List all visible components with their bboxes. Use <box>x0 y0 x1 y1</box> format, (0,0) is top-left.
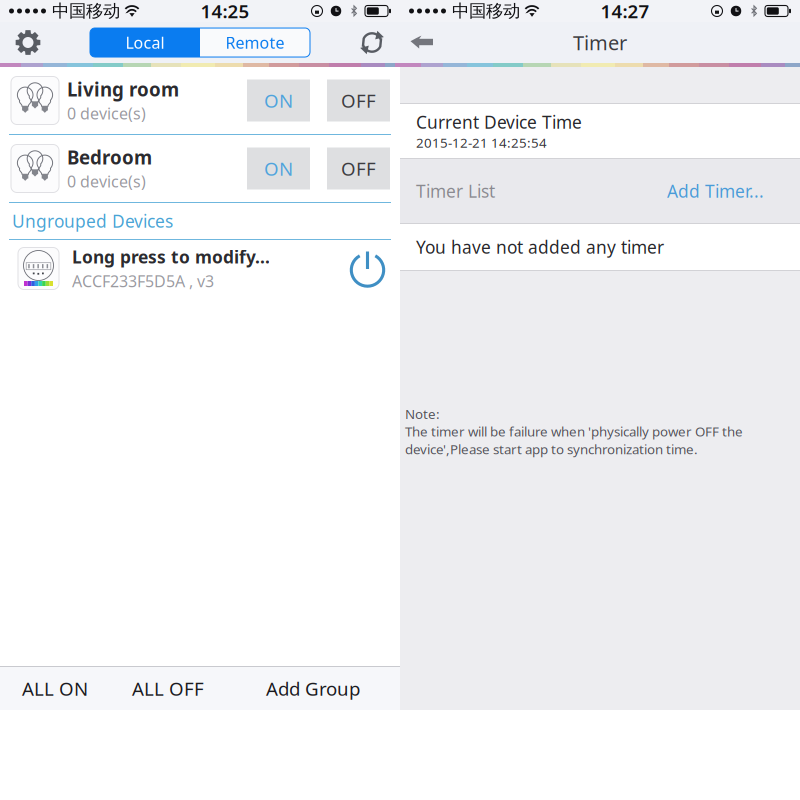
staticText: Living room <box>67 77 179 102</box>
button[interactable]: ALL ON <box>0 667 110 710</box>
staticText: ALL ON <box>22 676 88 701</box>
button[interactable]: ON <box>247 79 310 121</box>
staticText: ON <box>264 156 293 181</box>
staticText: Note: <box>405 405 440 423</box>
staticText: The timer will be failure when 'physical… <box>405 423 743 440</box>
staticText: Local <box>125 32 164 53</box>
staticText: Current Device Time <box>416 111 582 134</box>
staticText: Timer <box>573 29 627 56</box>
staticText: 0 device(s) <box>67 171 146 192</box>
staticText: 2015-12-21 14:25:54 <box>416 134 547 151</box>
button[interactable]: ALL OFF <box>110 667 226 710</box>
button[interactable]: Refresh <box>350 23 394 61</box>
staticText: device',Please start app to synchronizat… <box>405 440 698 458</box>
staticText: Add Group <box>266 676 360 701</box>
staticText: Long press to modify... <box>72 245 270 268</box>
button[interactable]: ON <box>247 147 310 189</box>
button[interactable]: Add Timer... <box>667 179 764 202</box>
staticText: 中国移动 <box>452 0 520 22</box>
staticText: Timer List <box>416 179 495 202</box>
button[interactable]: Settings <box>6 23 50 61</box>
button[interactable]: Local <box>90 28 200 57</box>
staticText: 14:27 <box>600 0 649 23</box>
staticText: ALL OFF <box>132 676 204 701</box>
staticText: 0 device(s) <box>67 103 146 124</box>
staticText: 中国移动 <box>52 0 120 22</box>
staticText: OFF <box>341 156 376 181</box>
staticText: Remote <box>225 32 284 53</box>
staticText: Bedroom <box>67 145 152 170</box>
staticText: ON <box>264 88 293 113</box>
staticText: You have not added any timer <box>416 235 664 258</box>
button[interactable]: Add Group <box>226 667 400 710</box>
button[interactable]: OFF <box>327 147 390 189</box>
staticText: ACCF233F5D5A , v3 <box>72 270 214 292</box>
staticText: 14:25 <box>200 0 249 23</box>
staticText: OFF <box>341 88 376 113</box>
button[interactable]: Long press to modify... <box>0 240 400 297</box>
button[interactable]: Back <box>400 26 444 59</box>
button[interactable]: Remote <box>200 28 310 57</box>
staticText: Ungrouped Devices <box>12 209 173 232</box>
staticText: Add Timer... <box>667 179 764 202</box>
button[interactable]: OFF <box>327 79 390 121</box>
